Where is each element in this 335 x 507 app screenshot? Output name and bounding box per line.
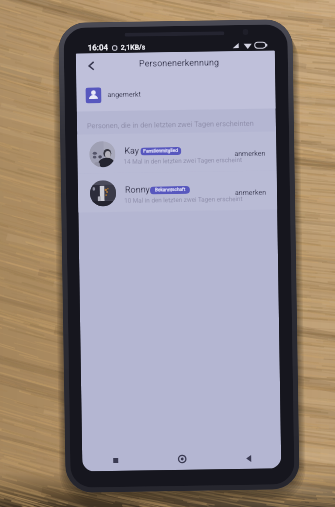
button[interactable]: Kay [77,131,277,174]
staticText: Kay [124,146,139,157]
staticText: Personen, die in den letzten zwei Tagen … [87,119,254,130]
staticText: 2,1KB/s [121,43,146,52]
staticText: angemerkt [107,91,141,99]
staticText: Familienmitglied [143,148,178,154]
button[interactable]: anmerken [233,149,266,159]
button[interactable]: Recent apps [82,449,149,470]
button[interactable]: Home [149,448,215,469]
button[interactable]: Ronny [78,170,277,213]
staticText: 14 Mal in den letzten zwei Tagen erschei… [123,156,243,165]
staticText: 16:04 [88,43,109,52]
staticText: anmerken [234,150,265,158]
staticText: anmerken [235,189,266,197]
button[interactable]: Back [215,447,281,468]
button[interactable]: anmerken [234,188,267,198]
staticText: Ronny [125,184,150,196]
staticText: 10 Mal in den letzten zwei Tagen erschei… [124,195,243,204]
staticText: Bekanntschaft [155,187,186,193]
button[interactable]: Back [81,54,101,76]
button[interactable]: angemerkt [76,76,276,112]
staticText: Personenerkennung [139,57,219,70]
